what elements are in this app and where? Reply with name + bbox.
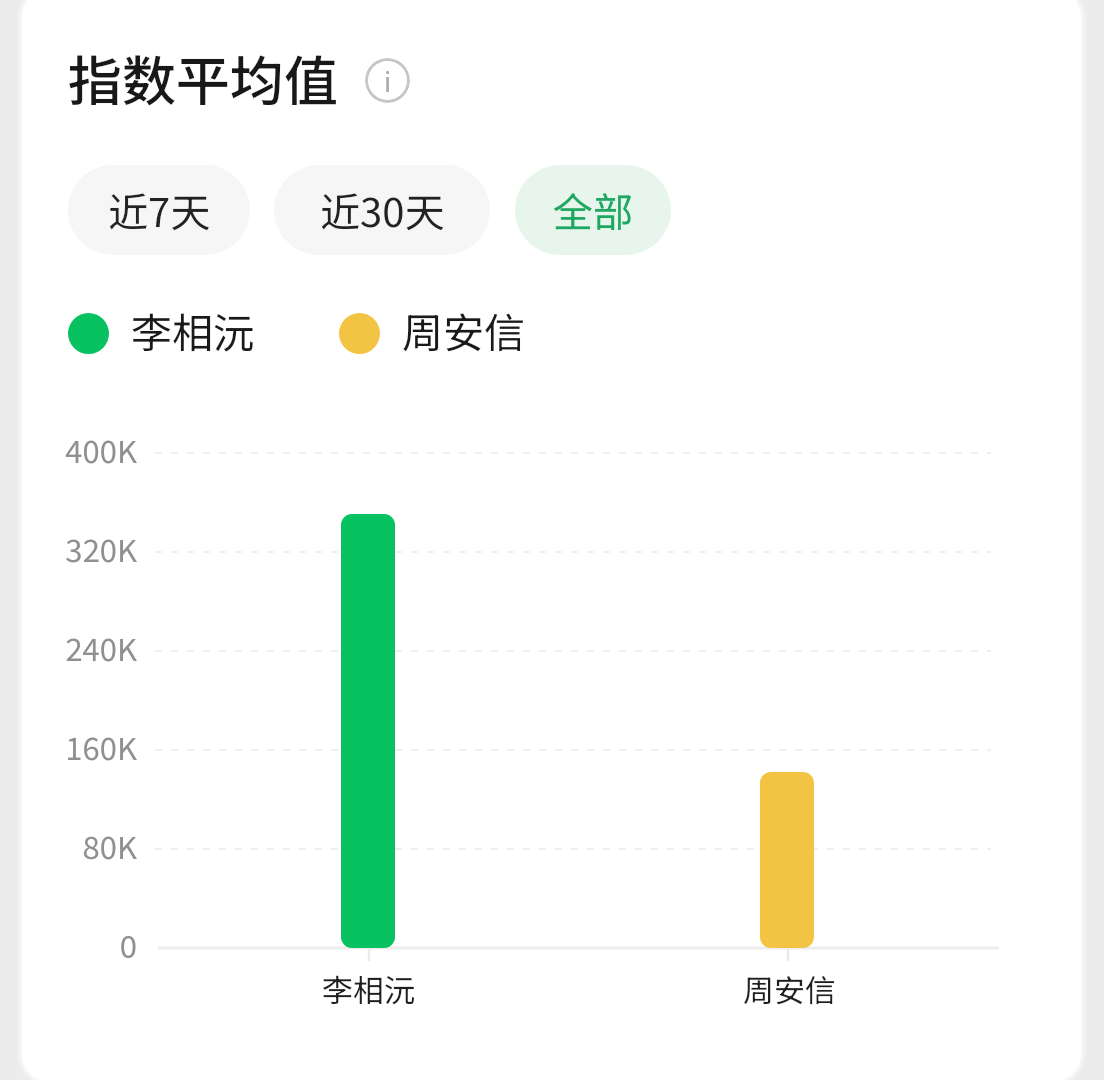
staticText: 近30天 — [320, 181, 445, 239]
staticText: 周安信 — [402, 300, 525, 359]
staticText: i — [384, 62, 392, 100]
staticText: 周安信 — [743, 966, 836, 1011]
staticText: 全部 — [553, 181, 633, 239]
staticText: 李相沅 — [322, 966, 415, 1011]
button[interactable]: 近30天 — [274, 165, 490, 255]
staticText: 160K — [65, 724, 137, 769]
button[interactable]: 全部 — [515, 165, 671, 255]
staticText: 240K — [65, 625, 137, 670]
staticText: 320K — [65, 526, 137, 571]
staticText: 400K — [65, 427, 137, 472]
button[interactable]: 周安信 — [339, 300, 525, 359]
button[interactable]: 近7天 — [68, 165, 250, 255]
staticText: 指数平均值 — [68, 38, 338, 116]
button[interactable]: 李相沅 — [68, 300, 254, 359]
button[interactable]: 指标说明 — [365, 58, 410, 103]
staticText: 0 — [119, 922, 137, 967]
staticText: 80K — [82, 823, 137, 868]
staticText: 李相沅 — [131, 300, 254, 359]
staticText: 近7天 — [108, 181, 211, 239]
